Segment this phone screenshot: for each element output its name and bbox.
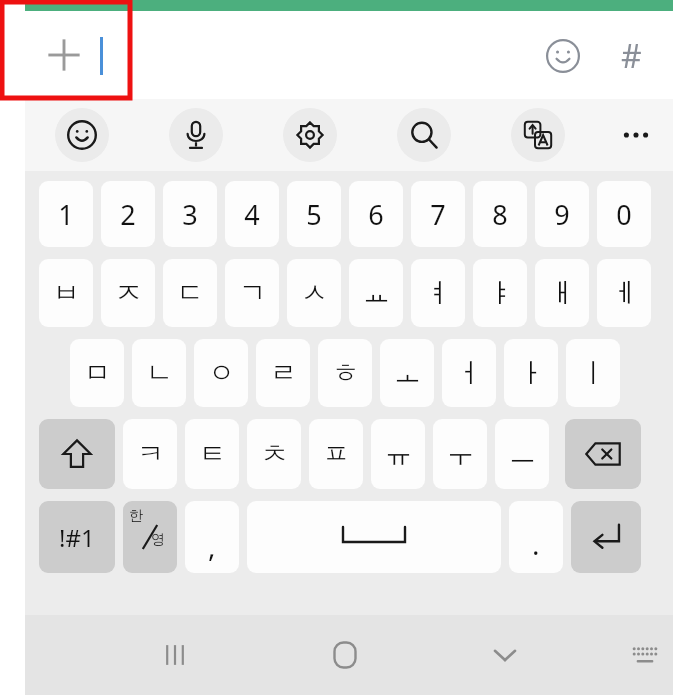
staticText: ㅈ — [115, 276, 142, 310]
button[interactable]: ㄴ — [132, 339, 186, 407]
button[interactable]: ㅍ — [309, 419, 363, 489]
staticText: 8 — [492, 196, 508, 233]
button[interactable]: Keyboard tool — [55, 108, 109, 162]
staticText: . — [532, 525, 540, 563]
staticText: ㅜ — [447, 437, 474, 471]
staticText: 5 — [306, 196, 322, 233]
button[interactable]: ㄷ — [163, 259, 217, 327]
button[interactable]: ㅗ — [380, 339, 434, 407]
button[interactable]: ㅇ — [194, 339, 248, 407]
button[interactable]: 8 — [473, 181, 527, 247]
button[interactable]: ㅠ — [371, 419, 425, 489]
button[interactable]: ㅎ — [318, 339, 372, 407]
button[interactable]: More options — [609, 108, 663, 162]
staticText: 3 — [182, 196, 198, 233]
button[interactable]: 4 — [225, 181, 279, 247]
button[interactable]: Enter — [571, 501, 641, 573]
button[interactable]: Keyboard tool — [511, 108, 565, 162]
staticText: ㅋ — [137, 437, 164, 471]
button[interactable]: ㅡ — [495, 419, 549, 489]
button[interactable]: ㅈ — [101, 259, 155, 327]
staticText: ㄴ — [146, 356, 173, 390]
button[interactable]: 0 — [597, 181, 651, 247]
staticText: ㅇ — [208, 356, 235, 390]
button[interactable]: Hashtag — [608, 33, 654, 79]
staticText: ㅁ — [84, 356, 111, 390]
staticText: ㄱ — [239, 276, 266, 310]
staticText: ㄹ — [270, 356, 297, 390]
staticText: 6 — [368, 196, 384, 233]
button[interactable]: ㅋ — [123, 419, 177, 489]
staticText: ㅊ — [261, 437, 288, 471]
button[interactable]: ㅑ — [473, 259, 527, 327]
staticText: ㅏ — [518, 356, 545, 390]
button[interactable]: , — [185, 501, 239, 573]
button[interactable]: 1 — [39, 181, 93, 247]
button[interactable]: Add attachment — [38, 29, 90, 81]
button[interactable]: Home — [325, 635, 365, 675]
button[interactable]: ㅐ — [535, 259, 589, 327]
staticText: ㅎ — [332, 356, 359, 390]
staticText: ㅐ — [549, 276, 576, 310]
staticText: ㅕ — [425, 276, 452, 310]
button[interactable]: ㅓ — [442, 339, 496, 407]
staticText: 1 — [58, 196, 74, 233]
staticText: , — [208, 527, 216, 565]
button[interactable]: ㅜ — [433, 419, 487, 489]
button[interactable]: ㅔ — [597, 259, 651, 327]
button[interactable]: ㅣ — [566, 339, 620, 407]
button[interactable]: 3 — [163, 181, 217, 247]
button[interactable]: Change keyboard — [625, 635, 665, 675]
button[interactable]: Keyboard tool — [283, 108, 337, 162]
button[interactable]: 5 — [287, 181, 341, 247]
staticText: ㅓ — [456, 356, 483, 390]
staticText: 영 — [151, 531, 165, 549]
button[interactable]: Keyboard tool — [169, 108, 223, 162]
button[interactable]: ㅌ — [185, 419, 239, 489]
staticText: ㅡ — [509, 437, 536, 471]
button[interactable]: ㅏ — [504, 339, 558, 407]
button[interactable]: 6 — [349, 181, 403, 247]
button[interactable]: Recent apps — [155, 635, 195, 675]
button[interactable]: ㄹ — [256, 339, 310, 407]
staticText: ㅅ — [301, 276, 328, 310]
staticText: 2 — [120, 196, 136, 233]
staticText: 7 — [430, 196, 446, 233]
staticText: 9 — [554, 196, 570, 233]
button[interactable]: ㅁ — [70, 339, 124, 407]
button[interactable]: !#1 — [39, 501, 115, 573]
button[interactable]: ㅛ — [349, 259, 403, 327]
staticText: ㅠ — [385, 437, 412, 471]
button[interactable]: ㅅ — [287, 259, 341, 327]
button[interactable]: ㅂ — [39, 259, 93, 327]
staticText: 한 — [129, 507, 143, 525]
button[interactable]: 7 — [411, 181, 465, 247]
button[interactable]: Hide keyboard — [485, 635, 525, 675]
staticText: ㅣ — [580, 356, 607, 390]
staticText: ㅗ — [394, 356, 421, 390]
button[interactable]: Backspace — [565, 419, 641, 489]
staticText: ㅔ — [611, 276, 638, 310]
button[interactable]: Shift — [39, 419, 115, 489]
button[interactable]: Keyboard tool — [397, 108, 451, 162]
staticText: ㅌ — [199, 437, 226, 471]
staticText: 4 — [244, 196, 260, 233]
button[interactable]: ㅕ — [411, 259, 465, 327]
staticText: # — [621, 34, 642, 78]
staticText: ㄷ — [177, 276, 204, 310]
staticText: ㅛ — [363, 276, 390, 310]
button[interactable]: Korean English toggle — [123, 501, 177, 573]
staticText: ㅍ — [323, 437, 350, 471]
button[interactable]: Space — [247, 501, 501, 573]
staticText: ㅑ — [487, 276, 514, 310]
staticText: 0 — [616, 196, 632, 233]
button[interactable]: ㅊ — [247, 419, 301, 489]
button[interactable]: ㄱ — [225, 259, 279, 327]
button[interactable]: . — [509, 501, 563, 573]
staticText: ㅂ — [53, 276, 80, 310]
button[interactable]: 9 — [535, 181, 589, 247]
staticText: !#1 — [59, 521, 95, 554]
button[interactable]: 2 — [101, 181, 155, 247]
button[interactable]: Emoji — [540, 33, 586, 79]
